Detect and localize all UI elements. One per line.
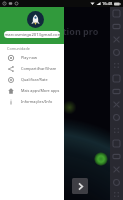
staticText: 16:48	[102, 1, 113, 6]
staticText: marcosmiego2013gmail.com	[4, 32, 60, 38]
button[interactable]: Grid	[110, 189, 123, 200]
button[interactable]: Cut	[110, 163, 123, 176]
button[interactable]: Crop	[110, 20, 123, 33]
button[interactable]: Record	[110, 7, 123, 20]
staticText: Nation pro	[50, 25, 99, 37]
button[interactable]: Effects	[110, 176, 123, 189]
button[interactable]: Record	[110, 72, 123, 85]
button[interactable]: Qualificar/Rate	[0, 74, 64, 85]
button[interactable]: Grid	[110, 59, 123, 72]
button[interactable]: Cut	[110, 33, 123, 46]
button[interactable]: Cut	[110, 98, 123, 111]
button[interactable]: Crop	[110, 85, 123, 98]
button[interactable]: Play now	[0, 52, 64, 63]
button[interactable]: Informações/Info	[0, 96, 64, 107]
button[interactable]: Record	[110, 137, 123, 150]
staticText: Compartilhar/Share	[21, 66, 57, 71]
staticText: Informações/Info	[21, 99, 53, 104]
button[interactable]: Crop	[110, 150, 123, 163]
button[interactable]: Mais apps/More apps	[0, 85, 64, 96]
button[interactable]: Next	[72, 178, 88, 194]
staticText: Play now	[21, 55, 37, 60]
staticText: Comunidade	[7, 46, 30, 51]
button[interactable]: Effects	[110, 46, 123, 59]
button[interactable]: Effects	[110, 111, 123, 124]
button[interactable]: Grid	[110, 124, 123, 137]
button[interactable]: Compartilhar/Share	[0, 63, 64, 74]
staticText: Qualificar/Rate	[21, 77, 48, 82]
staticText: Mais apps/More apps	[21, 88, 60, 93]
